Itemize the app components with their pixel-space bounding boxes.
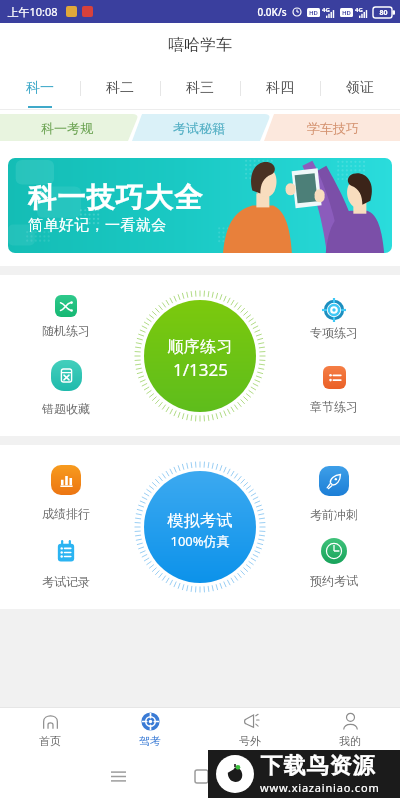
staticText: 科三 [186,79,214,97]
button[interactable]: 随机练习 [23,295,109,338]
button[interactable]: 科三 [160,67,240,110]
button[interactable]: 我的 [300,708,400,752]
button[interactable]: 领证 [320,67,400,110]
button[interactable]: 预约考试 [291,538,377,588]
button[interactable]: 专项练习 [291,298,377,340]
staticText: 驾考 [139,734,161,748]
button[interactable]: 科一考规 [0,114,133,141]
staticText: 简单好记，一看就会 [28,216,167,235]
staticText: 随机练习 [42,323,90,338]
staticText: 嘻哈学车 [168,35,232,55]
staticText: 学车技巧 [307,120,359,136]
button[interactable]: 模拟考试 [144,471,256,583]
staticText: 4G [322,6,330,14]
staticText: 成绩排行 [42,506,90,521]
button[interactable]: 成绩排行 [23,465,109,521]
staticText: 科一 [26,79,54,97]
staticText: 专项练习 [310,325,358,340]
staticText: 科一考规 [41,120,93,136]
staticText: 我的 [339,734,361,748]
button[interactable]: 学车技巧 [265,114,400,141]
button[interactable]: Home [188,763,214,789]
staticText: www.xiazainiao.com [260,780,380,795]
button[interactable]: Menu [105,763,131,789]
button[interactable]: 章节练习 [291,366,377,414]
button[interactable]: 考试秘籍 [133,114,265,141]
staticText: 首页 [39,734,61,748]
staticText: 号外 [239,734,261,748]
button[interactable]: 科一 [0,67,80,110]
staticText: 1/1325 [173,358,228,381]
staticText: 错题收藏 [42,401,90,416]
button[interactable]: 驾考 [100,708,200,752]
staticText: 科一技巧大全 [28,180,204,215]
staticText: 80 [379,8,388,18]
button[interactable]: 科二 [80,67,160,110]
other: Watermark [208,750,400,798]
staticText: 模拟考试 [167,511,233,531]
staticText: 考试秘籍 [173,120,225,136]
staticText: 100%仿真 [170,532,230,550]
button[interactable]: 号外 [200,708,300,752]
staticText: 领证 [346,79,374,97]
staticText: 0.0K/s [257,5,287,19]
staticText: HD [342,9,351,17]
staticText: 科四 [266,79,294,97]
staticText: 顺序练习 [167,337,233,357]
staticText: 上午10:08 [7,4,58,19]
staticText: HD [309,9,318,17]
staticText: 科二 [106,79,134,97]
staticText: 章节练习 [310,399,358,414]
button[interactable]: 首页 [0,708,100,752]
button[interactable]: 顺序练习 [144,300,256,412]
staticText: 下载鸟资源 [260,752,375,780]
button[interactable]: 科四 [240,67,320,110]
staticText: 考前冲刺 [310,507,358,522]
staticText: 考试记录 [42,574,90,589]
button[interactable]: 科一技巧大全 [8,158,392,253]
button[interactable]: 考前冲刺 [291,466,377,522]
staticText: 预约考试 [310,573,358,588]
button[interactable]: 考试记录 [23,537,109,589]
staticText: 4G [355,6,363,14]
button[interactable]: 错题收藏 [23,360,109,416]
